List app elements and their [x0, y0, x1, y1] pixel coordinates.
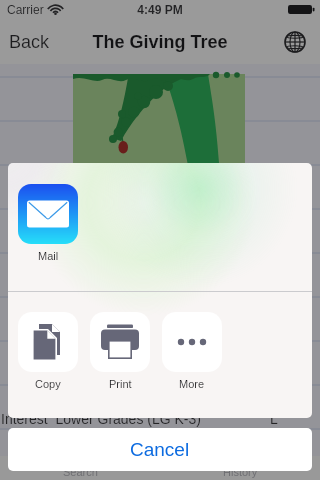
- staticText: Cancel: [130, 439, 190, 460]
- button[interactable]: Back: [9, 20, 50, 64]
- button[interactable]: Mail: [18, 184, 78, 256]
- staticText: Mail: [38, 250, 59, 262]
- staticText: The Giving Tree: [0, 32, 320, 52]
- button[interactable]: Cancel: [8, 428, 312, 471]
- staticText: Print: [109, 378, 132, 390]
- button[interactable]: Language: [278, 20, 312, 64]
- staticText: History: [223, 466, 258, 478]
- staticText: More: [179, 378, 205, 390]
- staticText: Search: [63, 466, 98, 478]
- button[interactable]: History: [160, 456, 320, 480]
- button[interactable]: Print: [90, 312, 150, 384]
- button[interactable]: Copy: [18, 312, 78, 384]
- staticText: L: [270, 411, 278, 427]
- staticText: Copy: [35, 378, 61, 390]
- staticText: Back: [9, 32, 50, 52]
- button[interactable]: Search: [0, 456, 160, 480]
- staticText: Carrier: [7, 3, 44, 16]
- button[interactable]: More: [162, 312, 222, 384]
- staticText: Interest Lower Grades (LG K-3): [1, 411, 201, 427]
- staticText: 4:49 PM: [0, 3, 320, 16]
